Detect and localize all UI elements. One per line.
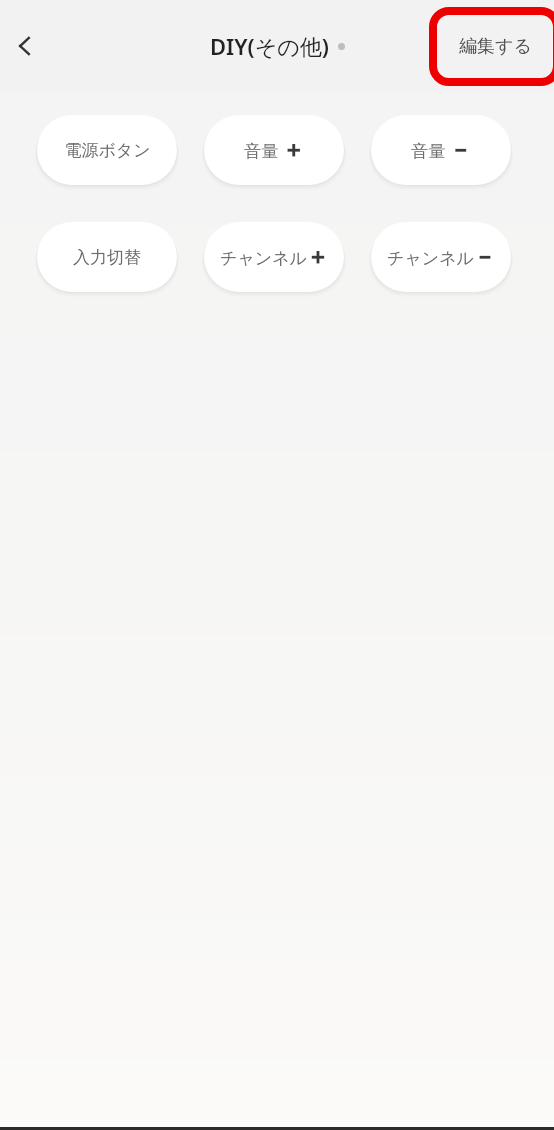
staticText: 音量 ＋	[244, 137, 304, 163]
staticText: DIY(その他)	[210, 31, 329, 61]
button[interactable]: 音量 ＋	[204, 115, 344, 185]
staticText: 入力切替	[73, 247, 141, 268]
staticText: 電源ボタン	[64, 140, 151, 161]
button[interactable]: Back	[2, 23, 48, 69]
staticText: 音量 －	[411, 137, 471, 163]
button[interactable]: 編集する	[433, 11, 554, 82]
staticText: チャンネル＋	[220, 244, 328, 270]
button[interactable]: 入力切替	[37, 222, 177, 292]
staticText: 編集する	[459, 35, 532, 58]
button[interactable]: 電源ボタン	[37, 115, 177, 185]
button[interactable]: チャンネル＋	[204, 222, 344, 292]
button[interactable]: 音量 －	[371, 115, 511, 185]
staticText: チャンネル－	[387, 244, 495, 270]
button[interactable]: チャンネル－	[371, 222, 511, 292]
